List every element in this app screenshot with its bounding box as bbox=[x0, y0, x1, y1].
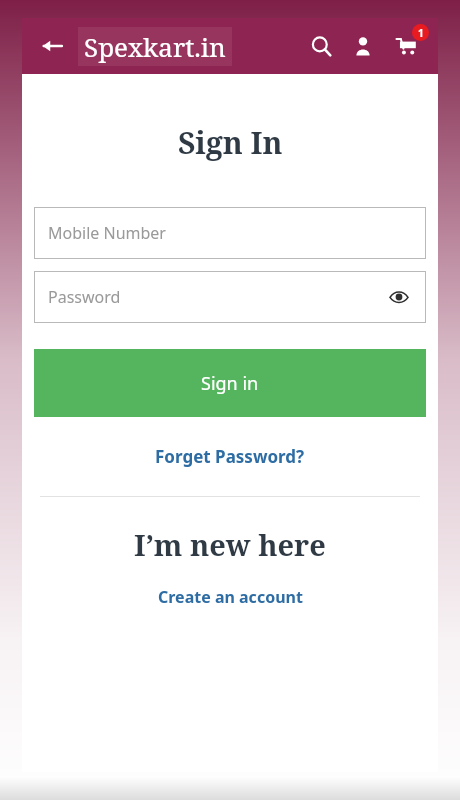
staticText: Password bbox=[48, 286, 121, 308]
staticText: Sign in bbox=[201, 371, 259, 396]
button[interactable]: Show password bbox=[386, 284, 412, 310]
button[interactable]: Forget Password? bbox=[149, 439, 311, 474]
button[interactable]: Password bbox=[34, 271, 426, 323]
staticText: 1 bbox=[418, 26, 424, 40]
staticText: Create an account bbox=[158, 586, 303, 608]
staticText: Mobile Number bbox=[48, 222, 166, 244]
staticText: Sign In bbox=[178, 122, 283, 163]
button[interactable]: Search bbox=[304, 29, 338, 63]
button[interactable]: Back bbox=[32, 26, 72, 66]
button[interactable]: Mobile Number bbox=[34, 207, 426, 259]
button[interactable]: Sign in bbox=[34, 349, 426, 417]
staticText: I’m new here bbox=[134, 525, 326, 564]
button[interactable]: Account bbox=[346, 29, 380, 63]
staticText: Spexkart.in bbox=[84, 29, 226, 64]
staticText: Forget Password? bbox=[155, 445, 305, 468]
button[interactable]: Create an account bbox=[152, 580, 309, 614]
button[interactable]: Cart bbox=[388, 27, 426, 65]
